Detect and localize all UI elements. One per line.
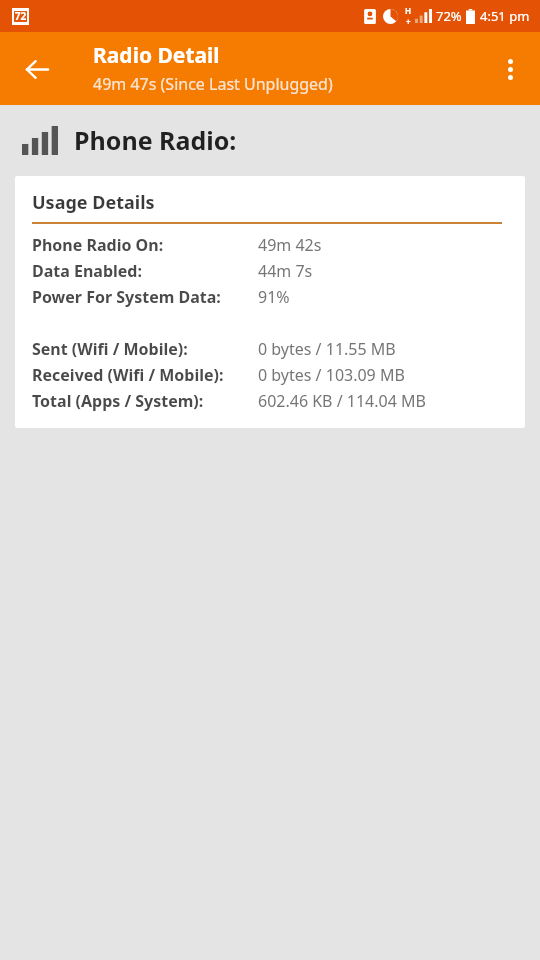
staticText: Sent (Wifi / Mobile): [32, 338, 188, 360]
staticText: Data Enabled: [32, 260, 142, 282]
staticText: Received (Wifi / Mobile): [32, 364, 224, 386]
staticText: + [406, 16, 411, 27]
staticText: Total (Apps / System): [32, 390, 204, 412]
staticText: 44m 7s [258, 260, 313, 282]
staticText: 72 [12, 9, 29, 26]
staticText: 0 bytes / 11.55 MB [258, 338, 396, 360]
staticText: Power For System Data: [32, 286, 221, 308]
staticText: 4:51 pm [480, 7, 530, 25]
staticText: Phone Radio On: [32, 234, 164, 256]
staticText: 49m 42s [258, 234, 322, 256]
staticText: 49m 47s (Since Last Unplugged) [93, 73, 333, 95]
button[interactable]: More options [486, 45, 534, 93]
button[interactable]: Back [13, 45, 61, 93]
staticText: Phone Radio: [74, 123, 237, 157]
staticText: H [405, 5, 412, 16]
staticText: 91% [258, 286, 290, 308]
staticText: Radio Detail [93, 41, 220, 70]
staticText: Usage Details [32, 190, 155, 215]
staticText: 602.46 KB / 114.04 MB [258, 390, 426, 412]
staticText: 0 bytes / 103.09 MB [258, 364, 405, 386]
staticText: 72% [436, 7, 462, 25]
